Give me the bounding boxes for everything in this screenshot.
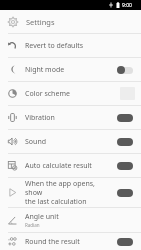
button[interactable]: When the app opens, show — [0, 178, 141, 207]
button[interactable]: Settings — [0, 10, 141, 33]
staticText: Settings — [26, 17, 55, 27]
button[interactable]: Show last calculation toggle — [115, 186, 135, 200]
button[interactable]: Color scheme — [0, 82, 141, 105]
staticText: Radian — [25, 222, 40, 228]
button[interactable]: Auto calculate result — [0, 154, 141, 177]
button[interactable]: Vibration — [0, 106, 141, 129]
staticText: Night mode — [25, 65, 65, 75]
button[interactable]: Vibration toggle — [115, 111, 135, 125]
button[interactable]: Angle unit — [0, 208, 141, 232]
staticText: 9:00 — [122, 2, 132, 8]
button[interactable]: Round the result toggle — [115, 235, 135, 249]
staticText: When the app opens, show — [25, 179, 111, 197]
staticText: Color scheme — [25, 89, 70, 99]
button[interactable]: Revert to defaults — [0, 34, 141, 57]
staticText: Round the result — [25, 237, 80, 247]
button[interactable]: Auto calculate result toggle — [115, 159, 135, 173]
staticText: Sound — [25, 137, 47, 147]
staticText: the last calculation — [25, 197, 87, 207]
staticText: Vibration — [25, 113, 55, 123]
staticText: Auto calculate result — [25, 161, 92, 171]
button[interactable]: Round the result — [0, 233, 141, 250]
button[interactable]: Night mode toggle — [115, 63, 135, 77]
staticText: Revert to defaults — [25, 41, 84, 51]
button[interactable]: Sound — [0, 130, 141, 153]
button[interactable]: Sound toggle — [115, 135, 135, 149]
button[interactable]: Night mode — [0, 58, 141, 81]
staticText: Angle unit — [25, 212, 59, 222]
